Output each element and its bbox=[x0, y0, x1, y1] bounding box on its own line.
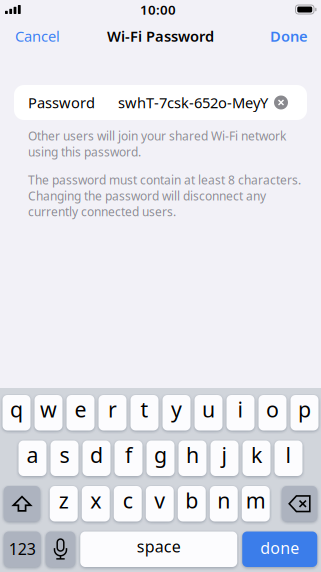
button[interactable]: Shift bbox=[4, 486, 40, 521]
staticText: y bbox=[171, 395, 182, 423]
staticText: e bbox=[74, 395, 86, 423]
staticText: c bbox=[123, 486, 133, 514]
button[interactable]: g bbox=[146, 440, 174, 476]
button[interactable]: x bbox=[82, 486, 110, 521]
staticText: Wi-Fi Password bbox=[107, 26, 214, 46]
staticText: The password must contain at least 8 cha… bbox=[28, 172, 301, 220]
staticText: h bbox=[186, 441, 199, 469]
button[interactable]: Dictate bbox=[46, 531, 75, 567]
button[interactable]: done bbox=[242, 531, 317, 567]
staticText: f bbox=[125, 441, 132, 469]
staticText: i bbox=[237, 395, 243, 423]
staticText: t bbox=[140, 395, 148, 423]
staticText: Cancel bbox=[15, 26, 60, 46]
staticText: z bbox=[59, 486, 69, 514]
button[interactable]: m bbox=[242, 486, 270, 521]
staticText: n bbox=[217, 486, 230, 514]
staticText: b bbox=[185, 486, 198, 514]
button[interactable]: h bbox=[178, 440, 206, 476]
staticText: g bbox=[154, 441, 167, 469]
staticText: space bbox=[137, 536, 181, 557]
button[interactable]: q bbox=[2, 395, 30, 430]
button[interactable]: c bbox=[114, 486, 142, 521]
staticText: j bbox=[221, 441, 227, 469]
button[interactable]: k bbox=[242, 440, 270, 476]
staticText: k bbox=[251, 441, 262, 469]
staticText: w bbox=[40, 395, 57, 423]
button[interactable]: y bbox=[162, 395, 190, 430]
staticText: a bbox=[26, 441, 38, 469]
staticText: p bbox=[298, 395, 311, 423]
staticText: q bbox=[10, 395, 23, 423]
button[interactable]: Clear text bbox=[268, 95, 293, 109]
button[interactable]: Cancel bbox=[0, 21, 75, 51]
staticText: Done bbox=[270, 26, 308, 46]
staticText: s bbox=[59, 441, 69, 469]
staticText: x bbox=[90, 486, 101, 514]
staticText: v bbox=[154, 486, 165, 514]
button[interactable]: 123 bbox=[4, 531, 41, 567]
staticText: o bbox=[266, 395, 279, 423]
button[interactable]: o bbox=[258, 395, 286, 430]
button[interactable]: a bbox=[18, 440, 46, 476]
staticText: Password bbox=[28, 93, 95, 112]
button[interactable]: v bbox=[146, 486, 174, 521]
staticText: swhT-7csk-652o-MeyY bbox=[118, 93, 268, 112]
button[interactable]: space bbox=[80, 531, 237, 567]
staticText: m bbox=[246, 486, 266, 514]
button[interactable]: Done bbox=[257, 21, 321, 51]
button[interactable]: z bbox=[50, 486, 78, 521]
staticText: 10:00 bbox=[140, 1, 176, 18]
button[interactable]: b bbox=[178, 486, 206, 521]
button[interactable]: t bbox=[130, 395, 158, 430]
staticText: d bbox=[90, 441, 103, 469]
button[interactable]: r bbox=[98, 395, 126, 430]
staticText: Other users will join your shared Wi-Fi … bbox=[28, 128, 286, 160]
staticText: r bbox=[108, 395, 117, 423]
staticText: u bbox=[202, 395, 215, 423]
button[interactable]: w bbox=[34, 395, 62, 430]
button[interactable]: n bbox=[210, 486, 238, 521]
button[interactable]: s bbox=[50, 440, 78, 476]
button[interactable]: j bbox=[210, 440, 238, 476]
staticText: l bbox=[285, 441, 291, 469]
button[interactable]: p bbox=[290, 395, 318, 430]
button[interactable]: i bbox=[226, 395, 254, 430]
button[interactable]: e bbox=[66, 395, 94, 430]
button[interactable]: Delete bbox=[282, 486, 317, 521]
button[interactable]: l bbox=[274, 440, 302, 476]
staticText: done bbox=[260, 537, 299, 558]
button[interactable]: d bbox=[82, 440, 110, 476]
button[interactable]: f bbox=[114, 440, 142, 476]
button[interactable]: u bbox=[194, 395, 222, 430]
staticText: 123 bbox=[9, 538, 36, 559]
